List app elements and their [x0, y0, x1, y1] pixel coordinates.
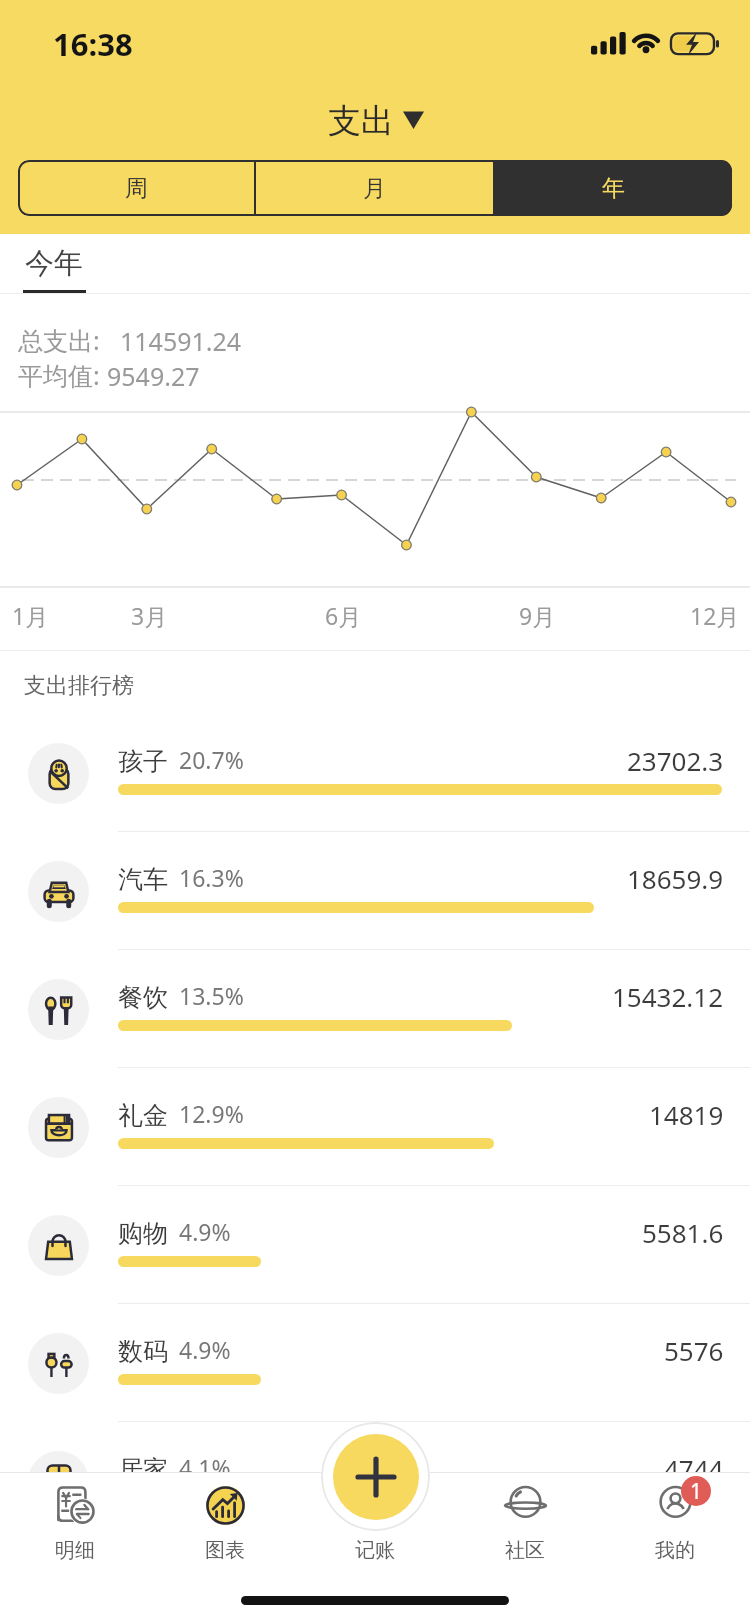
staticText: 15432.12 — [612, 979, 724, 1014]
staticText: 汽车 — [118, 864, 168, 895]
staticText: 图表 — [205, 1538, 245, 1563]
staticText: 3月 — [131, 600, 168, 631]
staticText: 4744 — [664, 1451, 724, 1486]
staticText: 16:38 — [53, 23, 133, 65]
button[interactable]: 明细 — [0, 1472, 150, 1623]
staticText: 9月 — [519, 600, 556, 631]
staticText: 4.1% — [179, 1452, 231, 1483]
staticText: 购物 — [118, 1218, 168, 1249]
staticText: 月 — [363, 174, 386, 203]
button[interactable]: 周 — [18, 160, 254, 216]
button[interactable]: 居家 — [0, 1421, 750, 1539]
staticText: 总支出: — [18, 323, 100, 357]
staticText: 23702.3 — [627, 743, 724, 778]
button[interactable]: 我的 — [600, 1472, 750, 1623]
button[interactable]: 记账 — [333, 1434, 419, 1520]
button[interactable]: 月 — [256, 160, 493, 216]
staticText: 平均值: — [18, 358, 100, 392]
button[interactable]: 餐饮 — [0, 949, 750, 1067]
staticText: 1月 — [12, 600, 49, 631]
staticText: 6月 — [325, 600, 362, 631]
button[interactable]: 孩子 — [0, 713, 750, 831]
staticText: 1 — [690, 1477, 703, 1506]
staticText: 居家 — [118, 1454, 168, 1485]
staticText: 20.7% — [179, 744, 244, 775]
staticText: 社区 — [505, 1538, 545, 1563]
staticText: 支出排行榜 — [24, 672, 134, 700]
button[interactable]: 图表 — [150, 1472, 300, 1623]
button[interactable]: 记账 — [300, 1472, 450, 1623]
staticText: 礼金 — [118, 1100, 168, 1131]
button[interactable]: 社区 — [450, 1472, 600, 1623]
button[interactable]: 年 — [495, 160, 732, 216]
button[interactable]: 支出 — [1, 100, 750, 142]
staticText: 13.5% — [179, 980, 244, 1011]
staticText: 9549.27 — [107, 359, 200, 393]
button[interactable]: 礼金 — [0, 1067, 750, 1185]
button[interactable]: 购物 — [0, 1185, 750, 1303]
staticText: 支出 — [328, 100, 394, 142]
button[interactable]: 汽车 — [0, 831, 750, 949]
button[interactable]: 数码 — [0, 1303, 750, 1421]
staticText: 16.3% — [179, 862, 244, 893]
staticText: 5576 — [664, 1333, 724, 1368]
staticText: 12.9% — [179, 1098, 244, 1129]
staticText: 12月 — [690, 600, 740, 631]
staticText: 今年 — [25, 245, 83, 282]
staticText: 记账 — [355, 1538, 395, 1563]
staticText: 114591.24 — [120, 324, 242, 358]
staticText: 明细 — [55, 1538, 95, 1563]
staticText: 孩子 — [118, 746, 168, 777]
staticText: 4.9% — [179, 1334, 231, 1365]
staticText: 餐饮 — [118, 982, 168, 1013]
staticText: 我的 — [655, 1538, 695, 1563]
staticText: 18659.9 — [627, 861, 724, 896]
staticText: 年 — [602, 174, 625, 203]
staticText: 4.9% — [179, 1216, 231, 1247]
staticText: 周 — [125, 174, 148, 203]
staticText: 5581.6 — [642, 1215, 724, 1250]
staticText: 14819 — [649, 1097, 724, 1132]
button[interactable]: 今年 — [23, 245, 85, 282]
staticText: 数码 — [118, 1336, 168, 1367]
